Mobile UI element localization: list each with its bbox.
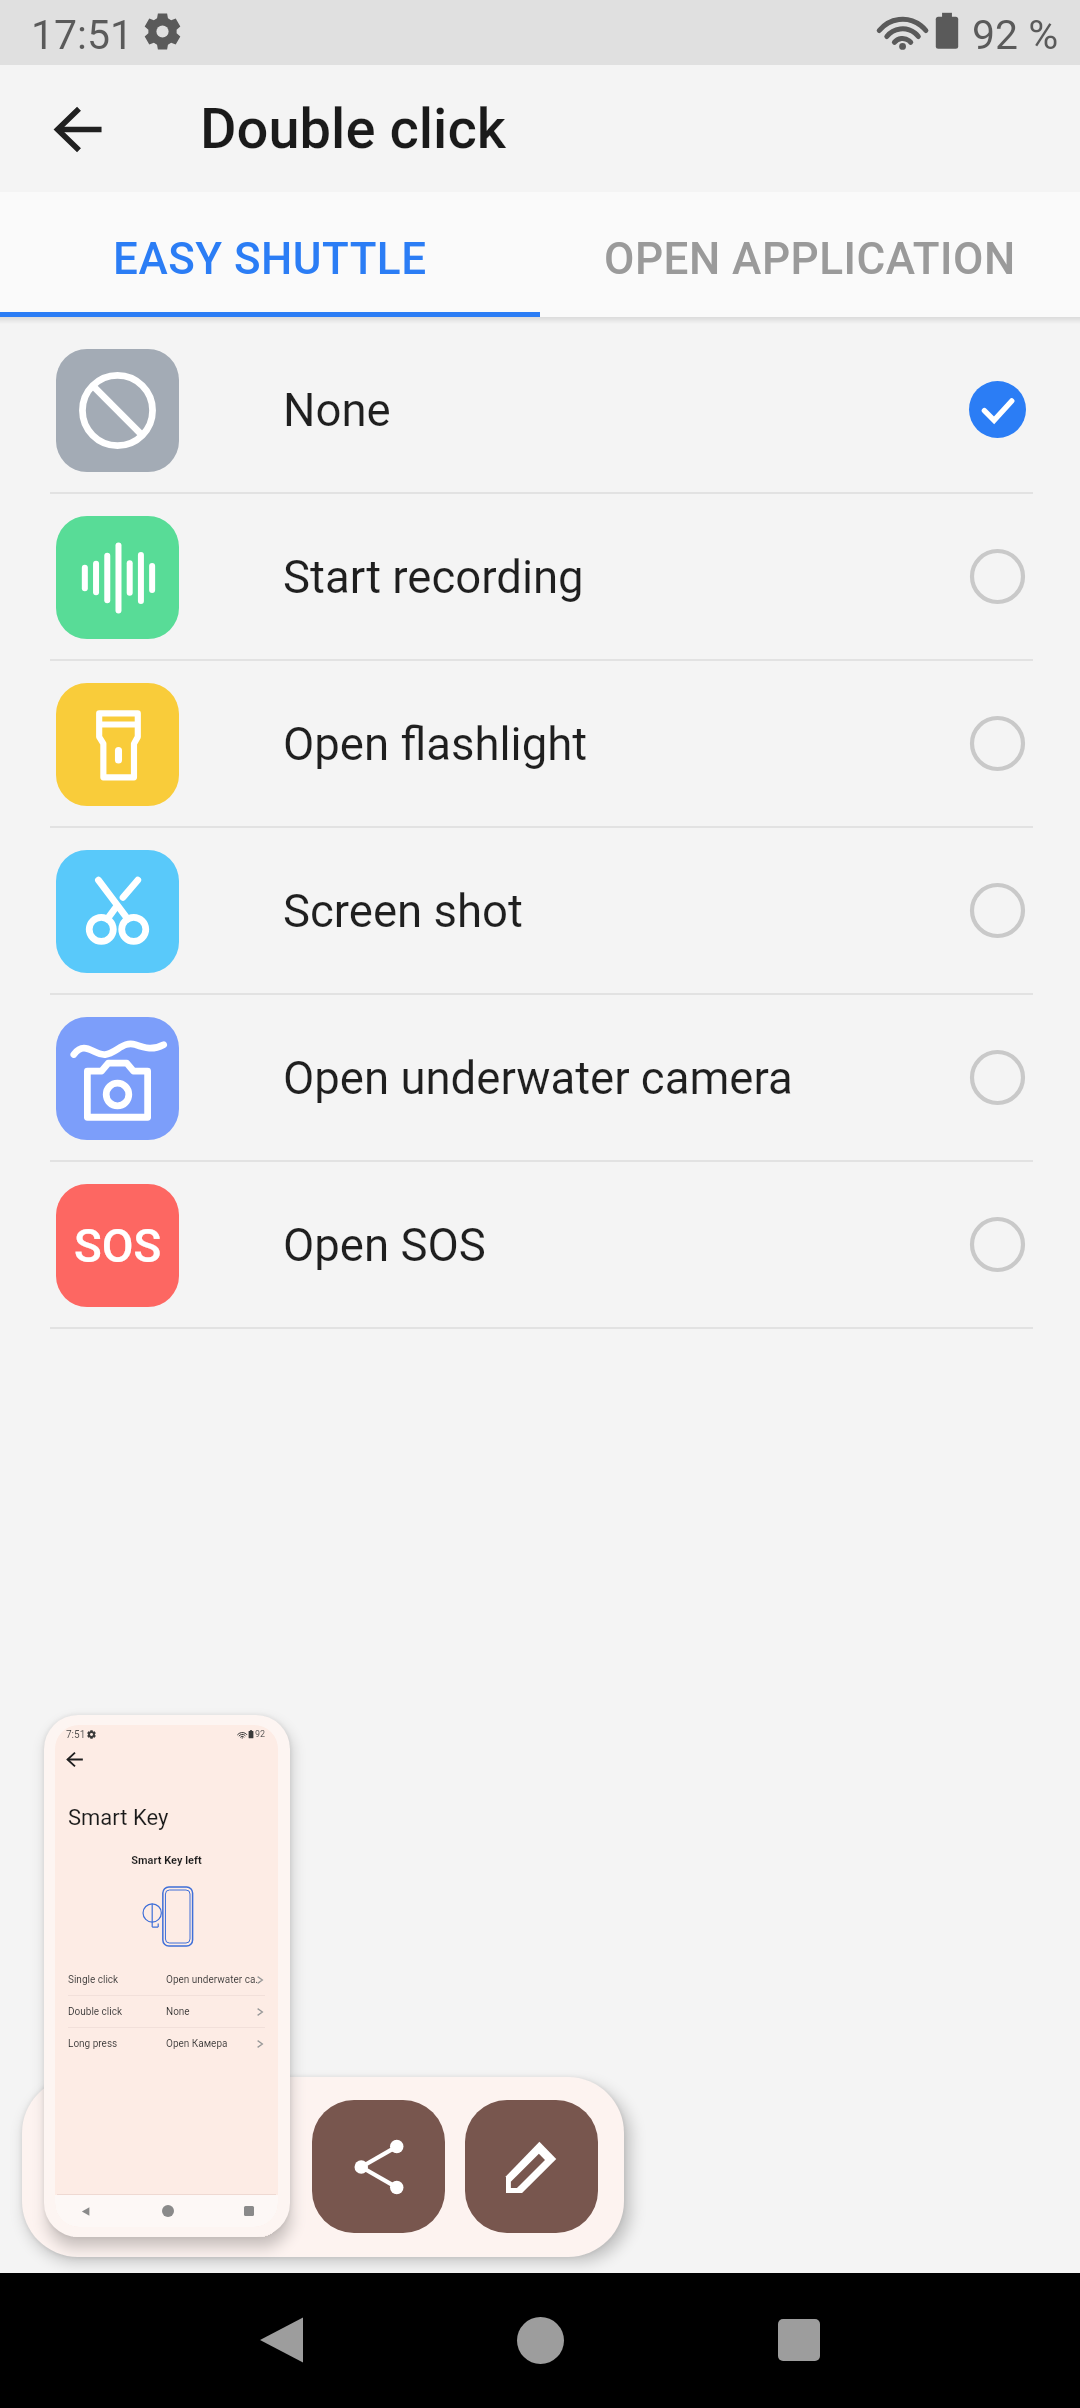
staticText: Start recording bbox=[283, 551, 584, 604]
button[interactable]: Single click bbox=[55, 1964, 278, 1995]
staticText: None bbox=[283, 384, 391, 437]
button[interactable]: Open underwater camera bbox=[0, 995, 1080, 1162]
staticText: Open underwater ca.. bbox=[166, 1974, 261, 1986]
staticText: Smart Key bbox=[68, 1805, 169, 1831]
staticText: OPEN APPLICATION bbox=[604, 233, 1016, 285]
staticText: Smart Key left bbox=[55, 1854, 278, 1867]
button[interactable]: Home bbox=[490, 2290, 590, 2390]
staticText: Screen shot bbox=[283, 885, 523, 938]
button[interactable]: Back bbox=[31, 81, 127, 177]
staticText: 7:51 bbox=[66, 1729, 86, 1741]
button[interactable]: Open flashlight bbox=[0, 661, 1080, 828]
button[interactable]: None bbox=[0, 327, 1080, 494]
staticText: Open SOS bbox=[283, 1219, 486, 1272]
staticText: Single click bbox=[68, 1974, 119, 1986]
staticText: Long press bbox=[68, 2038, 118, 2050]
staticText: 17:51 bbox=[31, 11, 134, 59]
button[interactable]: EASY SHUTTLE bbox=[0, 196, 540, 321]
staticText: EASY SHUTTLE bbox=[113, 233, 427, 285]
staticText: 92 bbox=[255, 1729, 266, 1740]
button[interactable]: Long press bbox=[55, 2028, 278, 2059]
button[interactable]: Start recording bbox=[0, 494, 1080, 661]
button[interactable]: Edit bbox=[465, 2100, 598, 2233]
staticText: SOS bbox=[74, 1219, 162, 1273]
button[interactable]: Screen shot bbox=[0, 828, 1080, 995]
button[interactable]: 7:51 bbox=[44, 1715, 290, 2237]
staticText: Double click bbox=[68, 2006, 123, 2018]
staticText: 92 % bbox=[972, 11, 1059, 59]
button[interactable]: Recents bbox=[749, 2290, 849, 2390]
button[interactable]: SOS bbox=[0, 1162, 1080, 1329]
button[interactable]: OPEN APPLICATION bbox=[540, 196, 1080, 321]
staticText: Open Камера bbox=[166, 2038, 228, 2050]
staticText: Double click bbox=[200, 96, 507, 162]
button[interactable]: Double click bbox=[55, 1996, 278, 2027]
button[interactable]: Share bbox=[312, 2100, 445, 2233]
staticText: Open flashlight bbox=[283, 718, 588, 771]
staticText: None bbox=[166, 2006, 190, 2018]
button[interactable]: Back bbox=[231, 2290, 331, 2390]
staticText: Open underwater camera bbox=[283, 1052, 793, 1105]
